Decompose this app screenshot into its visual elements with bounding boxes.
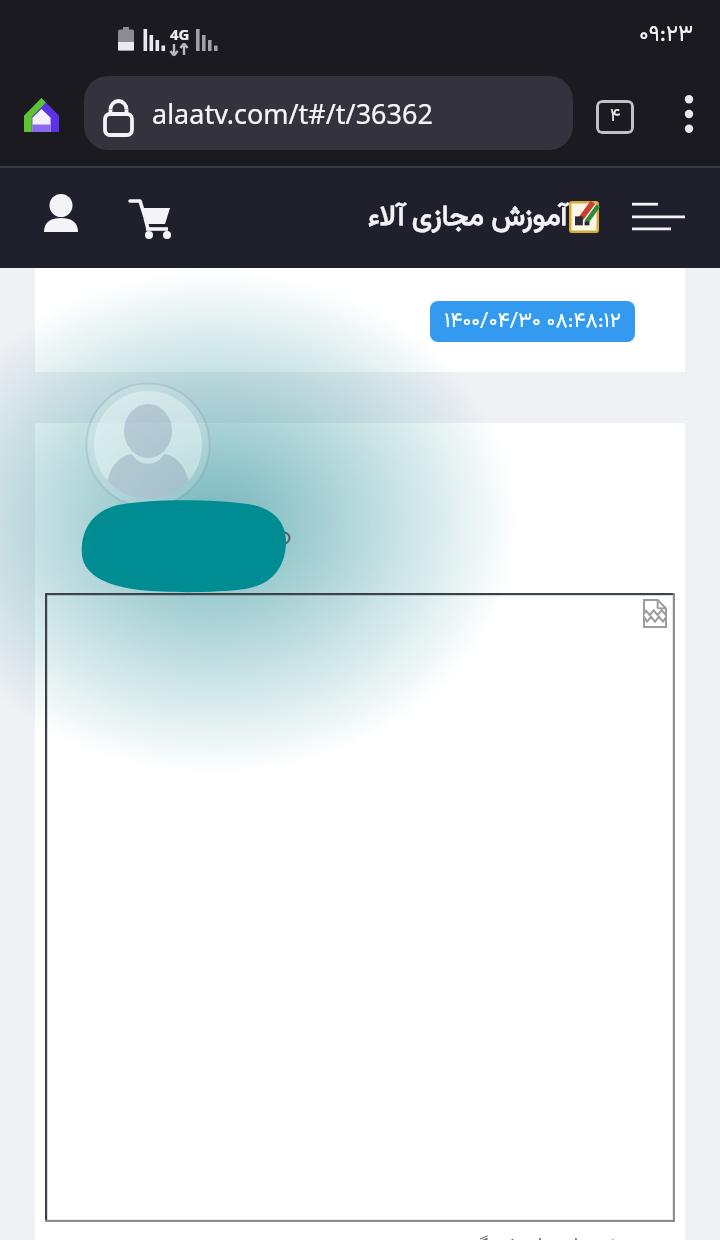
button[interactable]: ۱۴۰۰/۰۴/۳۰ ۰۸:۴۸:۱۲	[430, 301, 635, 342]
button[interactable]: Home	[14, 88, 69, 143]
staticText: آموزش مجازی آلاء	[368, 196, 568, 241]
button[interactable]: Account	[32, 182, 90, 240]
staticText: 4G	[170, 24, 190, 44]
button[interactable]: Cart	[118, 184, 180, 246]
staticText: ۰۹:۲۳	[639, 17, 694, 53]
button[interactable]: Tabs	[592, 94, 638, 140]
button[interactable]: alaatv.com/t#/t/36362	[84, 76, 573, 150]
button[interactable]: Menu	[620, 192, 694, 242]
staticText: alaatv.com/t#/t/36362	[152, 95, 433, 132]
button[interactable]: More options	[665, 90, 713, 138]
staticText: ۴	[610, 103, 621, 131]
staticText: ۱۴۰۰/۰۴/۳۰ ۰۸:۴۸:۱۲	[444, 305, 621, 338]
staticText: توضیحات پاسخ برگ	[470, 1230, 635, 1240]
